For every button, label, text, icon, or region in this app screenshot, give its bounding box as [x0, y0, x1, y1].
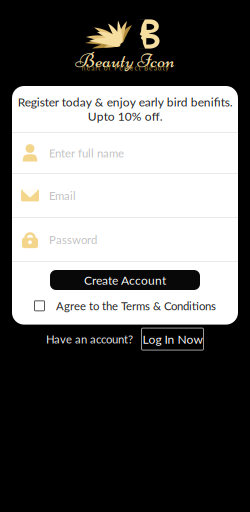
button[interactable]: Password: [12, 218, 238, 261]
staticText: Agree to the Terms & Conditions: [56, 299, 216, 313]
staticText: Have an account?: [46, 332, 133, 346]
staticText: Password: [49, 233, 97, 246]
staticText: heart of Perfect Beauty: [82, 64, 168, 72]
button[interactable]: Email: [12, 174, 238, 217]
button[interactable]: Agree to the Terms & Conditions: [34, 290, 216, 325]
staticText: Create Account: [84, 273, 166, 287]
button[interactable]: Create Account: [50, 270, 200, 290]
button[interactable]: Enter full name: [12, 133, 238, 173]
staticText: Email: [49, 189, 76, 202]
button[interactable]: Log In Now: [141, 328, 204, 351]
staticText: Enter full name: [49, 146, 124, 160]
staticText: Log In Now: [142, 332, 202, 346]
staticText: Register today & enjoy early bird benifi…: [17, 95, 232, 123]
staticText: Beauty Icon: [75, 48, 174, 73]
